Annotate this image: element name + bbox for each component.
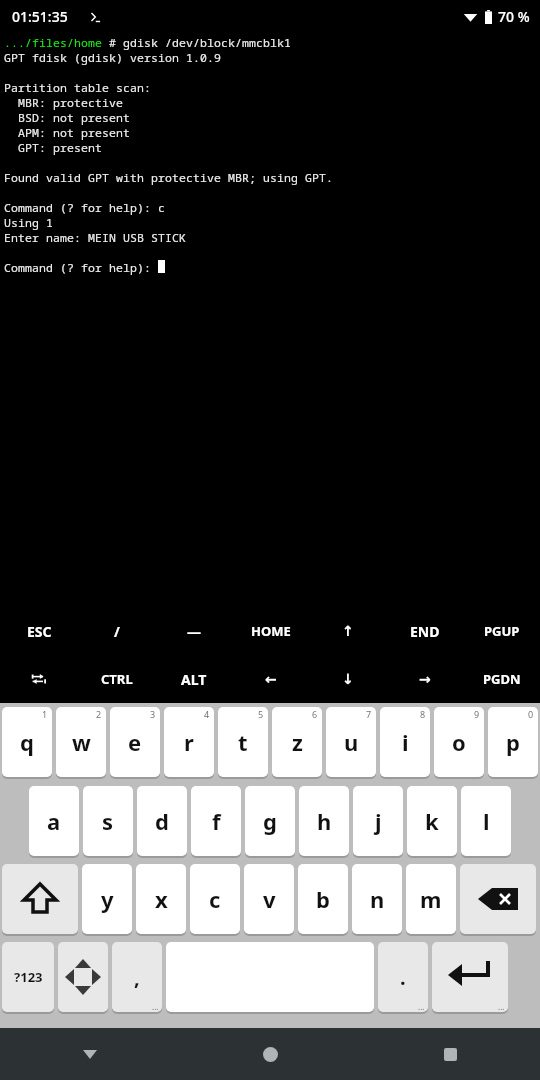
button[interactable]: ?123 (2, 942, 54, 1014)
button[interactable]: y (82, 864, 132, 936)
button[interactable]: → (386, 655, 463, 703)
staticText: c (209, 884, 221, 914)
button[interactable]: 1 (2, 707, 52, 779)
staticText: t (238, 727, 248, 757)
staticText: i (402, 727, 409, 757)
staticText: d (155, 806, 169, 836)
button[interactable]: ALT (155, 655, 232, 703)
staticText: ← (265, 671, 277, 687)
staticText: BSD: not present (4, 110, 130, 125)
staticText: 0 (528, 708, 534, 720)
button[interactable]: END (386, 607, 463, 655)
staticText: k (425, 806, 439, 836)
button[interactable]: CTRL (78, 655, 155, 703)
staticText: z (292, 727, 303, 757)
button[interactable]: h (299, 786, 349, 858)
button[interactable]: Space (166, 942, 374, 1014)
staticText: 7 (366, 708, 372, 720)
staticText: PGDN (483, 670, 521, 688)
button[interactable]: HOME (232, 607, 309, 655)
button[interactable]: ← (232, 655, 309, 703)
staticText: GPT: present (4, 140, 102, 155)
staticText: f (212, 806, 221, 836)
staticText: ... (498, 1001, 505, 1012)
staticText: o (452, 727, 466, 757)
button[interactable]: x (136, 864, 186, 936)
button[interactable]: 4 (164, 707, 214, 779)
button[interactable]: c (190, 864, 240, 936)
staticText: 6 (312, 708, 318, 720)
button[interactable]: Tab (0, 655, 78, 703)
staticText: y (101, 884, 114, 914)
button[interactable]: v (244, 864, 294, 936)
button[interactable]: a (29, 786, 79, 858)
button[interactable]: ↑ (309, 607, 386, 655)
button[interactable]: k (407, 786, 457, 858)
staticText: HOME (251, 622, 291, 640)
button[interactable]: 2 (56, 707, 106, 779)
button[interactable]: g (245, 786, 295, 858)
staticText: ?123 (14, 968, 43, 986)
button[interactable]: Recent apps (360, 1028, 540, 1080)
staticText: s (102, 806, 114, 836)
button[interactable]: b (298, 864, 348, 936)
staticText: Using 1 (4, 215, 53, 230)
staticText: 70 % (498, 7, 530, 26)
button[interactable]: 5 (218, 707, 268, 779)
button[interactable]: l (461, 786, 511, 858)
button[interactable]: PGDN (463, 655, 540, 703)
button[interactable]: n (352, 864, 402, 936)
staticText: j (375, 806, 382, 836)
staticText: Partition table scan: (4, 80, 151, 95)
button[interactable]: Backspace (460, 864, 536, 936)
staticText: Command (? for help): c (4, 200, 165, 215)
staticText: Command (? for help): (4, 260, 158, 275)
staticText: MBR: protective (4, 95, 123, 110)
button[interactable]: m (406, 864, 456, 936)
button[interactable]: s (83, 786, 133, 858)
button[interactable]: Enter (432, 942, 508, 1014)
staticText: e (128, 727, 142, 757)
staticText: 01:51:35 (12, 7, 68, 26)
button[interactable]: Back (0, 1028, 180, 1080)
button[interactable]: Shift (2, 864, 78, 936)
button[interactable]: d (137, 786, 187, 858)
staticText: p (506, 727, 520, 757)
staticText: r (184, 727, 194, 757)
button[interactable]: 6 (272, 707, 322, 779)
staticText: PGUP (484, 622, 520, 640)
staticText: w (72, 727, 91, 757)
staticText: ... (418, 1001, 425, 1012)
staticText: 3 (150, 708, 156, 720)
button[interactable]: Function keys (58, 942, 108, 1014)
staticText: Found valid GPT with protective MBR; usi… (4, 170, 333, 185)
staticText: l (483, 806, 490, 836)
button[interactable]: Home (180, 1028, 360, 1080)
staticText: GPT fdisk (gdisk) version 1.0.9 (4, 50, 221, 65)
button[interactable]: 3 (110, 707, 160, 779)
staticText: ... (152, 1001, 159, 1012)
button[interactable]: ↓ (309, 655, 386, 703)
staticText: — (187, 622, 201, 641)
button[interactable]: j (353, 786, 403, 858)
button[interactable]: f (191, 786, 241, 858)
staticText: n (370, 884, 385, 914)
staticText: a (47, 806, 61, 836)
button[interactable]: 9 (434, 707, 484, 779)
button[interactable]: 7 (326, 707, 376, 779)
button[interactable]: 8 (380, 707, 430, 779)
button[interactable]: 0 (488, 707, 538, 779)
staticText: g (263, 806, 277, 836)
button[interactable]: ... (378, 942, 428, 1014)
staticText: # gdisk /dev/block/mmcblk1 (109, 35, 291, 50)
staticText: / (114, 622, 120, 641)
staticText: → (419, 671, 431, 687)
button[interactable]: PGUP (463, 607, 540, 655)
button[interactable]: / (78, 607, 155, 655)
staticText: b (316, 884, 330, 914)
button[interactable]: — (155, 607, 232, 655)
button[interactable]: ... (112, 942, 162, 1014)
staticText: . (400, 964, 406, 991)
staticText: , (134, 964, 140, 991)
button[interactable]: ESC (0, 607, 78, 655)
